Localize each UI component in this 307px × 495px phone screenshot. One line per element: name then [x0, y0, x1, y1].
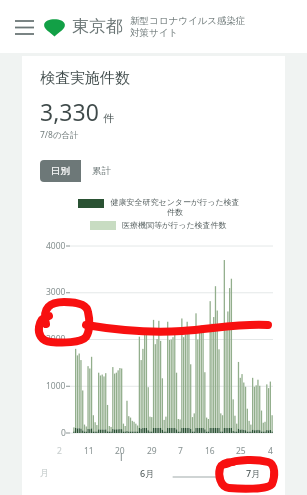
staticText: 医療機関等が行った検査件数: [122, 220, 227, 230]
staticText: 月: [40, 467, 49, 478]
staticText: 25: [236, 445, 246, 457]
staticText: 3000: [46, 286, 66, 298]
staticText: 累計: [92, 165, 111, 177]
staticText: 1000: [46, 380, 66, 392]
staticText: 新型コロナウイルス感染症: [130, 15, 246, 27]
button[interactable]: 日別: [40, 160, 81, 182]
staticText: 健康安全研究センターが行った検査 件数: [110, 197, 240, 218]
staticText: 0: [61, 427, 66, 439]
staticText: 3,330: [40, 96, 99, 127]
staticText: 2000: [46, 333, 66, 345]
staticText: 4: [268, 445, 273, 457]
staticText: 検査実施件数: [40, 69, 130, 88]
button[interactable]: Menu: [12, 15, 36, 39]
staticText: 16: [205, 445, 215, 457]
staticText: 11: [84, 445, 94, 457]
staticText: 日別: [51, 165, 70, 177]
staticText: 東京都: [72, 16, 123, 37]
staticText: 2: [57, 445, 62, 457]
button[interactable]: 累計: [81, 160, 122, 182]
staticText: 7: [178, 445, 183, 457]
staticText: 6月: [140, 467, 155, 479]
staticText: 件: [103, 111, 114, 125]
staticText: 20: [115, 445, 125, 457]
staticText: 対策サイト: [130, 27, 179, 39]
staticText: 7/8の合計: [40, 129, 79, 141]
staticText: 7月: [246, 467, 261, 479]
staticText: 29: [147, 445, 157, 457]
staticText: 4000: [46, 240, 66, 252]
